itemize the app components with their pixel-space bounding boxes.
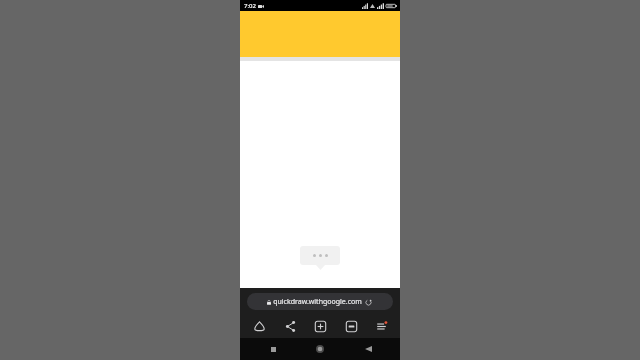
button[interactable]: New tab — [307, 315, 333, 337]
staticText: quickdraw.withgoogle.com — [273, 297, 362, 307]
button[interactable]: Share — [277, 315, 303, 337]
button[interactable]: Switch tabs — [338, 315, 364, 337]
button[interactable]: Home — [246, 315, 272, 337]
staticText: 7:02 — [244, 2, 256, 10]
button[interactable]: Home — [305, 339, 335, 359]
button[interactable]: Back — [353, 339, 383, 359]
button[interactable]: Recent apps — [258, 339, 288, 359]
button[interactable]: quickdraw.withgoogle.com — [247, 293, 393, 310]
button[interactable]: More options — [368, 315, 394, 337]
